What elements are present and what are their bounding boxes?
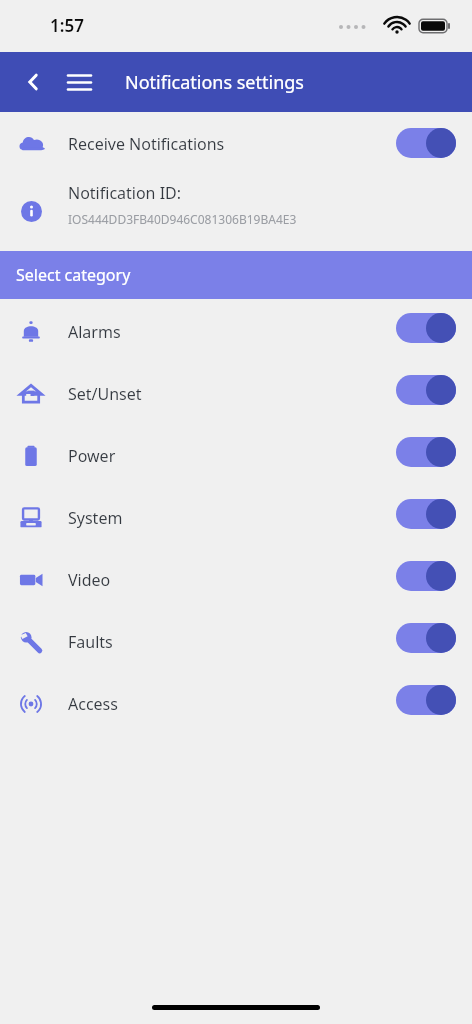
staticText: 1:57 xyxy=(50,14,84,37)
button[interactable]: Alarms xyxy=(0,301,472,363)
staticText: IOS444DD3FB40D946C081306B19BA4E3 xyxy=(68,211,297,227)
button[interactable]: Toggle xyxy=(396,437,456,467)
button[interactable]: Toggle xyxy=(396,499,456,529)
staticText: Set/Unset xyxy=(68,383,142,405)
button[interactable]: Notification ID: xyxy=(0,170,472,238)
button[interactable]: Video xyxy=(0,549,472,611)
button[interactable]: Toggle xyxy=(396,561,456,591)
staticText: Video xyxy=(68,569,111,591)
button[interactable]: Toggle xyxy=(396,128,456,158)
button[interactable]: Access xyxy=(0,673,472,735)
button[interactable]: Faults xyxy=(0,611,472,673)
button[interactable]: Set/Unset xyxy=(0,363,472,425)
button[interactable]: Power xyxy=(0,425,472,487)
staticText: Access xyxy=(68,693,118,715)
staticText: Select category xyxy=(16,264,131,286)
staticText: Notification ID: xyxy=(68,182,182,204)
staticText: Notifications settings xyxy=(125,70,304,95)
button[interactable]: Toggle xyxy=(396,375,456,405)
staticText: Power xyxy=(68,445,116,467)
staticText: Receive Notifications xyxy=(68,133,225,155)
button[interactable]: System xyxy=(0,487,472,549)
button[interactable]: Menu xyxy=(59,62,99,102)
button[interactable]: Toggle xyxy=(396,313,456,343)
staticText: Alarms xyxy=(68,321,121,343)
button[interactable]: Toggle xyxy=(396,623,456,653)
staticText: Faults xyxy=(68,631,113,653)
button[interactable]: Toggle xyxy=(396,685,456,715)
button[interactable]: Receive Notifications xyxy=(0,118,472,170)
button[interactable]: Back xyxy=(14,63,52,101)
staticText: System xyxy=(68,507,123,529)
